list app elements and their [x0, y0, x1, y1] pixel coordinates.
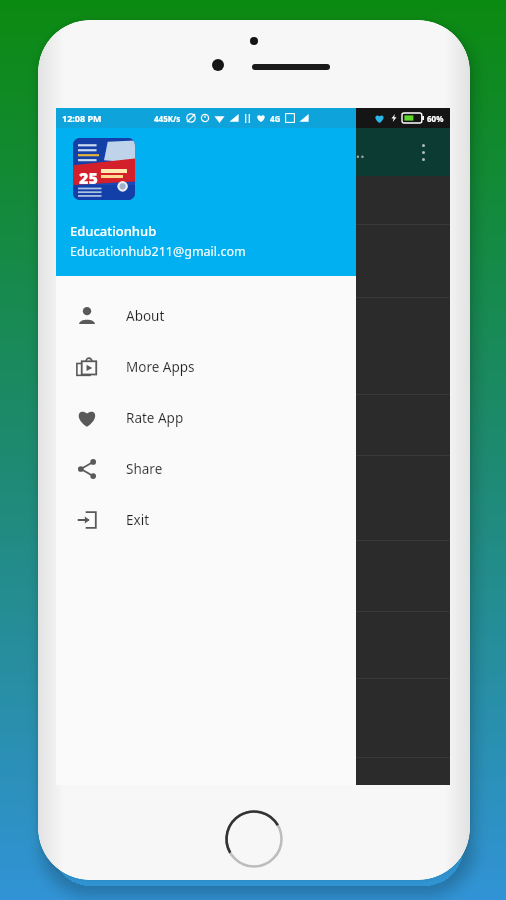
staticText: More Apps	[126, 358, 195, 376]
button[interactable]: More Apps	[56, 341, 356, 392]
button[interactable]	[56, 679, 450, 757]
staticText: 60%	[427, 113, 444, 124]
staticText: 445K/s	[154, 113, 181, 124]
button[interactable]	[56, 456, 450, 540]
staticText: Educationhub211@gmail.com	[70, 243, 246, 260]
staticText: About	[126, 307, 165, 325]
button[interactable]: 25	[56, 128, 356, 276]
staticText: Exit	[126, 511, 150, 529]
staticText: 12:08 PM	[62, 112, 102, 124]
staticText: Share	[126, 460, 163, 478]
staticText: 25	[79, 167, 98, 189]
staticText: Educationhub	[70, 222, 157, 240]
staticText: Rate App	[126, 409, 184, 427]
staticText: 4G	[270, 113, 281, 124]
button[interactable]	[56, 176, 450, 224]
button[interactable]	[56, 758, 450, 785]
button[interactable]	[56, 225, 450, 297]
button[interactable]: Exit	[56, 494, 356, 545]
button[interactable]	[56, 298, 450, 394]
button[interactable]	[56, 612, 450, 678]
button[interactable]: More options	[406, 135, 440, 169]
button[interactable]: Share	[56, 443, 356, 494]
button[interactable]	[56, 395, 450, 455]
button[interactable]	[56, 541, 450, 611]
staticText: Select...	[306, 141, 365, 163]
button[interactable]: Rate App	[56, 392, 356, 443]
button[interactable]: About	[56, 290, 356, 341]
